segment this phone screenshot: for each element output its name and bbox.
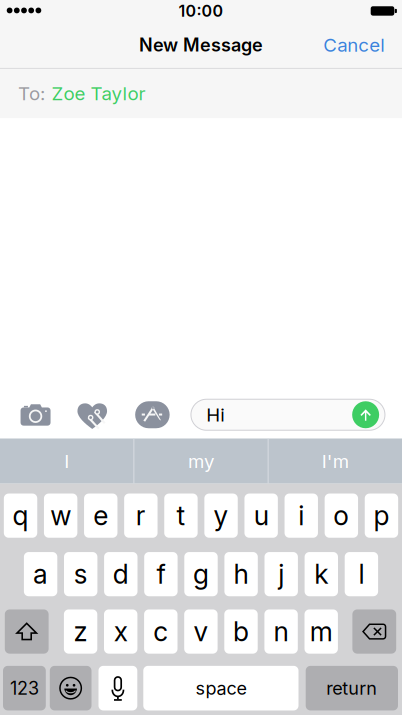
staticText: k (314, 558, 328, 590)
staticText: my (188, 450, 214, 472)
staticText: e (93, 499, 108, 532)
staticText: l (358, 558, 364, 590)
staticText: Zoe Taylor (51, 82, 145, 105)
button[interactable]: Send (352, 401, 379, 428)
staticText: b (233, 615, 249, 648)
staticText: x (114, 615, 128, 648)
button[interactable]: y (204, 493, 238, 538)
button[interactable]: l (345, 552, 378, 596)
staticText: i (298, 499, 304, 532)
staticText: 123 (10, 677, 39, 699)
button[interactable]: space (143, 666, 298, 710)
staticText: I'm (322, 450, 349, 472)
staticText: w (50, 499, 71, 532)
button[interactable]: z (64, 609, 97, 654)
staticText: s (74, 558, 88, 590)
staticText: Cancel (323, 34, 385, 56)
button[interactable]: o (325, 493, 358, 538)
button[interactable]: I'm (269, 438, 402, 484)
staticText: New Message (139, 34, 263, 56)
button[interactable]: m (304, 609, 338, 654)
button[interactable]: n (264, 609, 298, 654)
staticText: o (333, 499, 349, 532)
button[interactable]: 123 (3, 666, 46, 710)
staticText: n (274, 615, 289, 648)
button[interactable]: r (124, 493, 158, 538)
button[interactable]: c (144, 609, 177, 654)
staticText: v (193, 615, 208, 648)
staticText: q (13, 499, 29, 532)
staticText: To: (18, 82, 45, 105)
staticText: Hi (206, 403, 225, 426)
button[interactable]: f (144, 552, 178, 596)
staticText: h (234, 558, 249, 590)
staticText: f (156, 558, 165, 590)
button[interactable]: I (0, 438, 133, 484)
staticText: m (310, 615, 333, 648)
button[interactable]: Delete (352, 609, 396, 654)
staticText: r (136, 499, 146, 532)
staticText: a (33, 558, 48, 590)
staticText: g (193, 558, 209, 590)
staticText: c (153, 615, 168, 648)
button[interactable]: Digital Touch (77, 402, 107, 428)
button[interactable]: a (24, 552, 57, 596)
button[interactable]: w (44, 493, 77, 538)
button[interactable]: p (365, 493, 398, 538)
button[interactable]: s (64, 552, 97, 596)
button[interactable]: e (84, 493, 117, 538)
button[interactable]: b (224, 609, 258, 654)
staticText: 10:00 (178, 1, 223, 21)
button[interactable]: Take photo (21, 403, 51, 426)
button[interactable]: To: (0, 68, 402, 118)
button[interactable]: v (184, 609, 218, 654)
button[interactable]: return (306, 666, 398, 710)
button[interactable]: iMessage apps (135, 401, 170, 428)
button[interactable]: h (224, 552, 258, 596)
staticText: z (74, 615, 88, 648)
staticText: t (176, 499, 185, 532)
button[interactable]: t (164, 493, 198, 538)
button[interactable]: k (305, 552, 338, 596)
button[interactable]: Shift (5, 609, 49, 654)
staticText: return (326, 677, 377, 699)
button[interactable]: i (285, 493, 318, 538)
button[interactable]: d (104, 552, 137, 596)
button[interactable]: Cancel (315, 23, 393, 67)
staticText: p (373, 499, 389, 532)
button[interactable]: x (104, 609, 137, 654)
staticText: y (214, 499, 229, 532)
button[interactable]: Emoji (50, 666, 91, 710)
button[interactable]: j (264, 552, 298, 596)
staticText: j (278, 558, 284, 590)
button[interactable]: g (184, 552, 218, 596)
staticText: u (254, 499, 269, 532)
button[interactable]: Dictation (98, 666, 137, 710)
staticText: I (64, 450, 69, 472)
staticText: d (113, 558, 129, 590)
button[interactable]: q (4, 493, 37, 538)
button[interactable]: u (244, 493, 278, 538)
staticText: space (195, 677, 246, 699)
button[interactable]: my (134, 438, 268, 484)
